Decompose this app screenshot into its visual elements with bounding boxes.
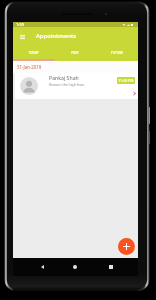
- button[interactable]: Recent apps: [102, 258, 120, 276]
- button[interactable]: Home: [66, 258, 84, 276]
- button[interactable]: Add appointment: [118, 238, 135, 255]
- staticText: TODAY: [28, 51, 39, 55]
- staticText: 1:59: [16, 22, 24, 27]
- staticText: 31-Jan-2019: [17, 64, 42, 70]
- staticText: 11:30 PM: [118, 78, 134, 83]
- staticText: PAST: [71, 51, 79, 55]
- staticText: FUTURE: [111, 51, 123, 55]
- button[interactable]: PAST: [54, 45, 96, 61]
- staticText: Reason: the high fever: [49, 82, 85, 87]
- staticText: Pankaj Shah: [49, 74, 79, 81]
- button[interactable]: FUTURE: [96, 45, 138, 61]
- button[interactable]: Pankaj Shah: [15, 73, 138, 99]
- button[interactable]: Open navigation menu: [17, 31, 28, 42]
- button[interactable]: TODAY: [13, 45, 54, 61]
- staticText: Appointments: [36, 32, 77, 40]
- button[interactable]: Back: [33, 258, 51, 276]
